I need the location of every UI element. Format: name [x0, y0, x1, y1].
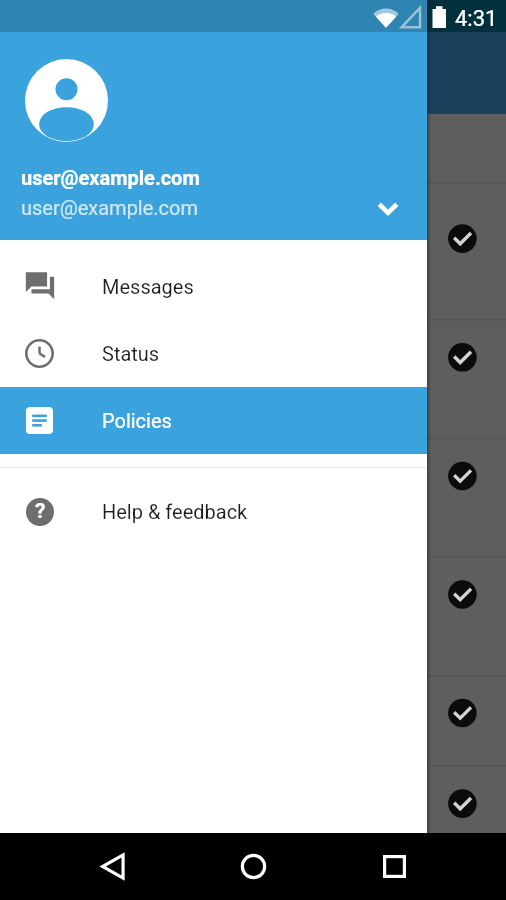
staticText: user@example.com	[21, 166, 200, 189]
button[interactable]: Status	[0, 320, 427, 387]
staticText: 4:31	[455, 6, 498, 32]
button[interactable]: Policies	[0, 387, 427, 454]
staticText: Policies	[102, 409, 172, 432]
button[interactable]: Messages	[0, 253, 427, 320]
staticText: ?	[35, 499, 46, 524]
button[interactable]: ?	[0, 478, 427, 545]
staticText: Help & feedback	[102, 500, 248, 523]
staticText: Status	[102, 342, 160, 365]
button[interactable]: Home	[230, 833, 277, 900]
button[interactable]: Switch account	[366, 186, 410, 230]
button[interactable]: Recent apps	[371, 833, 418, 900]
staticText: user@example.com	[21, 196, 199, 219]
button[interactable]: Back	[90, 833, 137, 900]
staticText: Messages	[102, 275, 194, 298]
